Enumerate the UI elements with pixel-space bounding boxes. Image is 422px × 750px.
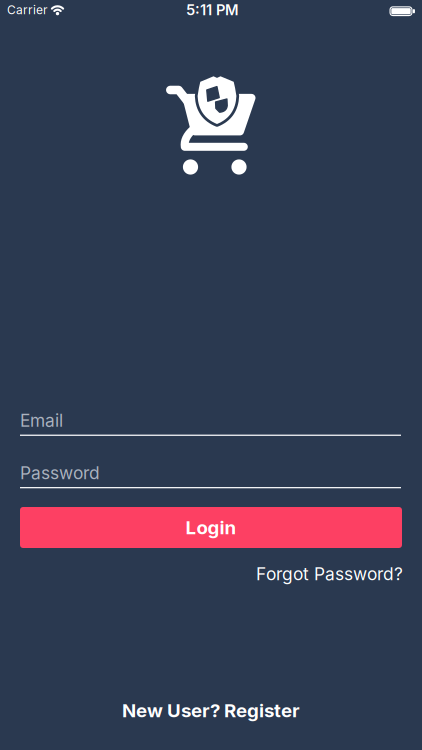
button[interactable]: New User? Register: [122, 699, 300, 721]
staticText: Forgot Password?: [256, 564, 403, 584]
staticText: Login: [185, 516, 236, 538]
staticText: New User? Register: [122, 699, 300, 721]
staticText: Password: [20, 463, 100, 483]
staticText: Email: [20, 410, 63, 431]
staticText: 5:11 PM: [186, 1, 239, 19]
button[interactable]: Password: [20, 462, 401, 488]
staticText: Carrier: [7, 3, 48, 17]
button[interactable]: Login: [20, 507, 402, 548]
button[interactable]: Email: [20, 410, 401, 436]
button[interactable]: Forgot Password?: [22, 564, 403, 584]
